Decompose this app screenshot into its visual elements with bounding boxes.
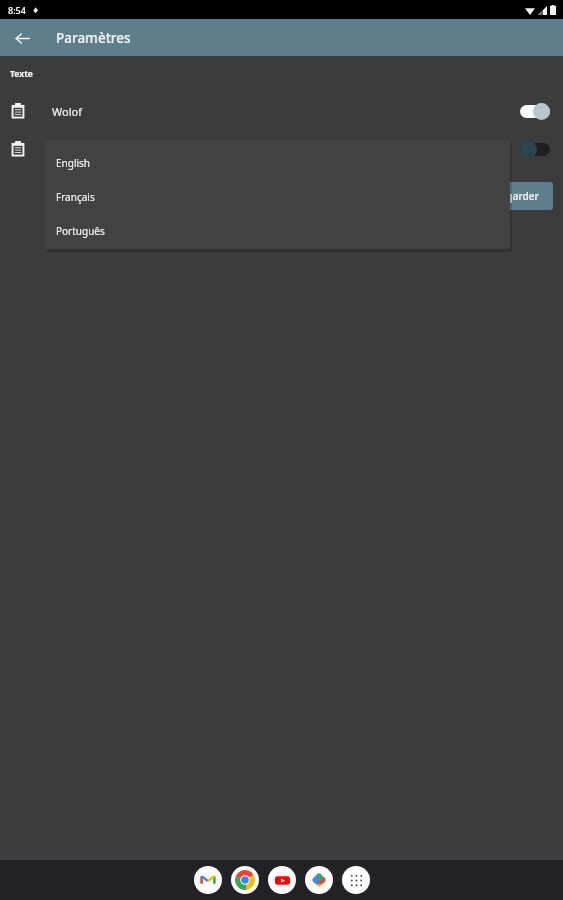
button[interactable]: All apps (342, 866, 370, 894)
button[interactable]: Toggle on (517, 100, 553, 122)
button[interactable]: English (45, 146, 510, 180)
staticText: Français (56, 190, 95, 204)
button[interactable]: Photos (305, 866, 333, 894)
staticText: English (56, 156, 91, 170)
button[interactable]: Toggle off (517, 138, 553, 160)
button[interactable]: Wolof (0, 92, 563, 130)
button[interactable]: Chrome (231, 866, 259, 894)
button[interactable]: Sauvegarder (464, 182, 553, 210)
button[interactable]: Gmail (194, 866, 222, 894)
staticText: Wolof (52, 104, 82, 119)
staticText: Português (56, 224, 105, 238)
staticText: Paramètres (56, 29, 131, 47)
button[interactable]: Toggle off (0, 130, 563, 168)
button[interactable]: Français (45, 180, 510, 214)
button[interactable]: Português (45, 214, 510, 248)
button[interactable]: Back (8, 24, 36, 52)
staticText: Texte (10, 68, 33, 80)
staticText: 8:54 (8, 4, 26, 16)
staticText: Sauvegarder (478, 189, 539, 203)
button[interactable]: YouTube (268, 866, 296, 894)
